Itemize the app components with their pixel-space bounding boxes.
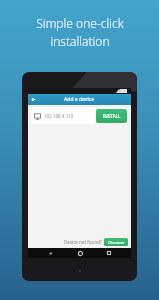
staticText: Discover (108, 240, 125, 245)
button[interactable]: Home (73, 248, 87, 258)
button[interactable]: Back (43, 248, 57, 258)
staticText: Simple one-click (36, 15, 124, 31)
button[interactable]: 192.168.4.119 (31, 108, 128, 124)
button[interactable]: Discover (104, 238, 128, 246)
button[interactable]: Recent apps (102, 248, 116, 258)
button[interactable]: INSTALL (96, 109, 127, 123)
staticText: Add a device (64, 96, 95, 103)
staticText: 192.168.4.119 (44, 113, 74, 119)
staticText: installation (50, 33, 110, 49)
staticText: INSTALL (103, 113, 121, 119)
button[interactable]: Back (31, 97, 36, 102)
button[interactable]: Device not found? (64, 239, 102, 245)
button[interactable]: Back (28, 94, 131, 105)
